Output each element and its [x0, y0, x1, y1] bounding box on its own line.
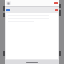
button[interactable]: Home	[26, 62, 38, 63]
button[interactable]: Menu	[6, 1, 11, 5]
button[interactable]: Filter	[6, 9, 10, 11]
button[interactable]: Notifications	[55, 9, 58, 11]
button[interactable]: Filter	[6, 8, 58, 12]
button[interactable]: Action	[54, 2, 58, 4]
